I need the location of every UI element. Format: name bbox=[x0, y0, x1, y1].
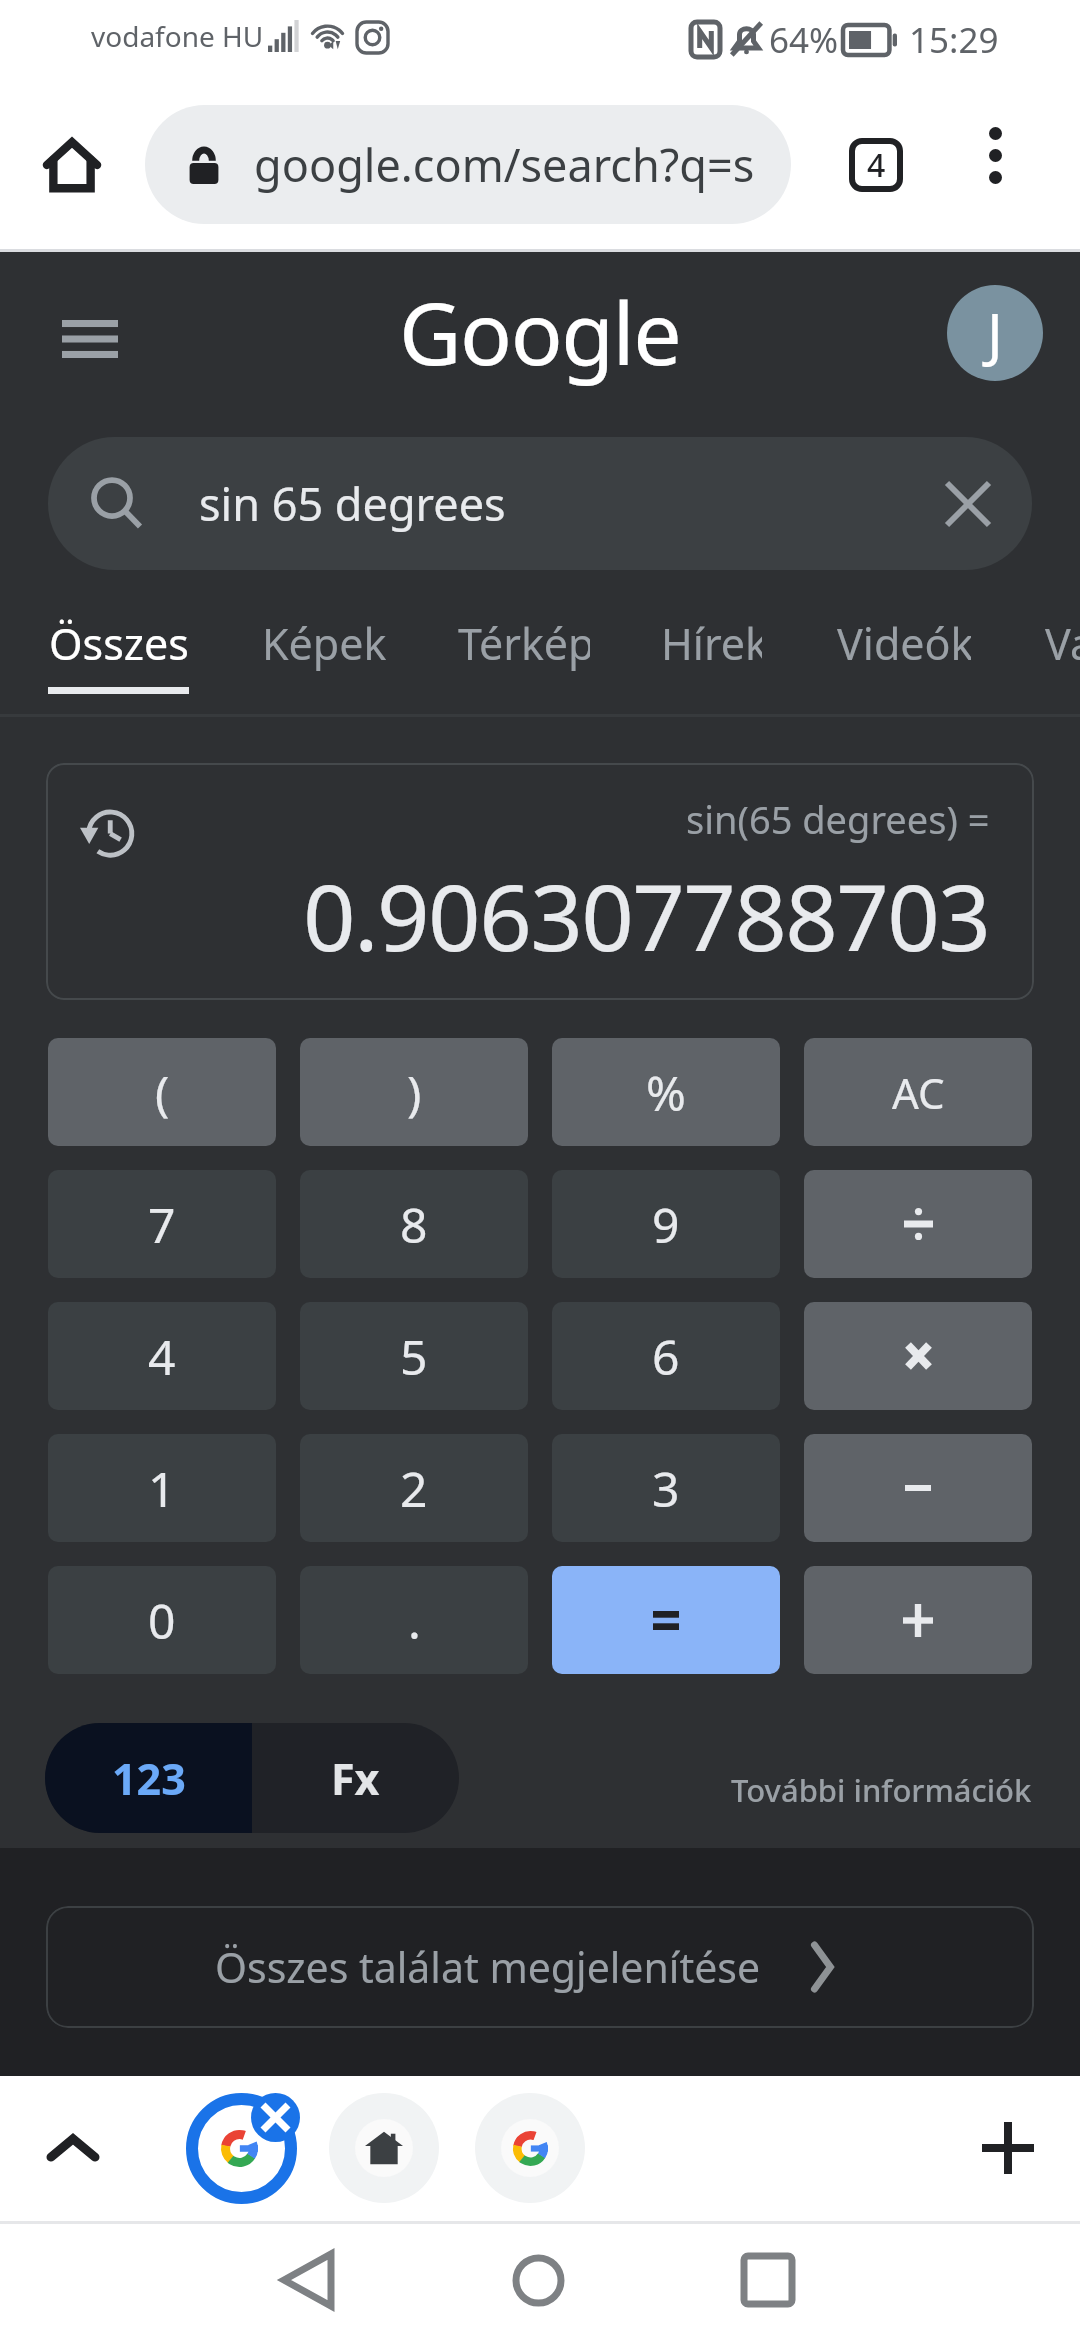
staticText: Térkép bbox=[458, 614, 590, 673]
button[interactable]: 2 bbox=[300, 1434, 528, 1542]
staticText: 9 bbox=[652, 1192, 680, 1257]
staticText: Hírek bbox=[661, 614, 762, 673]
button[interactable]: Fx bbox=[252, 1723, 459, 1833]
button[interactable] bbox=[804, 1566, 1032, 1674]
button[interactable]: Összes bbox=[48, 614, 189, 694]
button[interactable]: 4 bbox=[48, 1302, 276, 1410]
button[interactable]: 9 bbox=[552, 1170, 780, 1278]
staticText: % bbox=[646, 1060, 686, 1125]
button[interactable]: Back bbox=[257, 2230, 357, 2330]
button[interactable]: . bbox=[300, 1566, 528, 1674]
staticText: 8 bbox=[400, 1192, 428, 1257]
staticText: google.com/search?q=s bbox=[254, 134, 755, 195]
staticText: 1 bbox=[148, 1456, 176, 1521]
staticText: 64% bbox=[769, 16, 839, 64]
staticText: Összes bbox=[49, 614, 189, 673]
button[interactable]: ( bbox=[48, 1038, 276, 1146]
staticText: Va bbox=[1045, 614, 1080, 673]
button[interactable]: 8 bbox=[300, 1170, 528, 1278]
staticText: . bbox=[408, 1588, 421, 1653]
button[interactable]: New tab bbox=[968, 2108, 1048, 2188]
button[interactable]: % bbox=[552, 1038, 780, 1146]
button[interactable]: 7 bbox=[48, 1170, 276, 1278]
button[interactable]: Home tab bbox=[329, 2093, 439, 2203]
button[interactable]: 1 bbox=[48, 1434, 276, 1542]
staticText: 7 bbox=[148, 1192, 176, 1257]
button[interactable]: Menu bbox=[48, 307, 132, 371]
button[interactable] bbox=[804, 1170, 1032, 1278]
button[interactable]: Home bbox=[488, 2230, 588, 2330]
staticText: Képek bbox=[262, 614, 386, 673]
button[interactable] bbox=[804, 1302, 1032, 1410]
staticText: 123 bbox=[112, 1749, 186, 1808]
button[interactable]: Térkép bbox=[458, 614, 590, 694]
button[interactable]: Tabs bbox=[829, 118, 923, 212]
staticText: 6 bbox=[652, 1324, 680, 1389]
button[interactable] bbox=[804, 1434, 1032, 1542]
staticText: Összes találat megjelenítése bbox=[215, 1939, 761, 1995]
staticText: ( bbox=[155, 1060, 170, 1125]
button[interactable]: Home bbox=[22, 115, 122, 215]
staticText: sin 65 degrees bbox=[199, 473, 506, 534]
staticText: 3 bbox=[652, 1456, 680, 1521]
button[interactable]: Hírek bbox=[661, 614, 762, 694]
staticText: 2 bbox=[400, 1456, 428, 1521]
staticText: Fx bbox=[331, 1749, 380, 1808]
button[interactable]: 3 bbox=[552, 1434, 780, 1542]
button[interactable]: Képek bbox=[262, 614, 386, 694]
button[interactable]: 5 bbox=[300, 1302, 528, 1410]
button[interactable]: Close tab bbox=[251, 2093, 300, 2142]
button[interactable]: Videók bbox=[837, 614, 971, 694]
staticText: 5 bbox=[400, 1324, 428, 1389]
staticText: Google bbox=[399, 273, 681, 390]
button[interactable]: Account bbox=[947, 285, 1043, 381]
button[interactable]: További információk bbox=[620, 1754, 1032, 1826]
staticText: 4 bbox=[148, 1324, 176, 1389]
button[interactable]: Összes találat megjelenítése bbox=[46, 1906, 1034, 2028]
button[interactable]: Expand toolbar bbox=[33, 2108, 113, 2188]
button[interactable]: More options bbox=[955, 115, 1035, 195]
staticText: sin(65 degrees) = bbox=[686, 793, 990, 845]
button[interactable]: ) bbox=[300, 1038, 528, 1146]
button[interactable]: sin 65 degrees bbox=[48, 437, 1032, 570]
button[interactable]: Google tab bbox=[475, 2093, 585, 2203]
staticText: J bbox=[987, 294, 1003, 373]
staticText: AC bbox=[892, 1064, 945, 1121]
staticText: További információk bbox=[731, 1769, 1032, 1811]
staticText: Videók bbox=[837, 614, 971, 673]
button[interactable]: 123 bbox=[45, 1723, 252, 1833]
staticText: vodafone HU bbox=[91, 17, 264, 55]
button[interactable]: AC bbox=[804, 1038, 1032, 1146]
button[interactable]: 0 bbox=[48, 1566, 276, 1674]
button[interactable]: 6 bbox=[552, 1302, 780, 1410]
staticText: 15:29 bbox=[909, 16, 999, 64]
button[interactable]: Va bbox=[1030, 614, 1080, 694]
staticText: 4 bbox=[867, 143, 886, 187]
staticText: 0 bbox=[148, 1588, 176, 1653]
staticText: ) bbox=[407, 1060, 422, 1125]
staticText: 0.906307788703 bbox=[303, 853, 990, 978]
button[interactable]: google.com/search?q=s bbox=[145, 105, 791, 224]
button[interactable]: Recents bbox=[718, 2230, 818, 2330]
button[interactable] bbox=[552, 1566, 780, 1674]
